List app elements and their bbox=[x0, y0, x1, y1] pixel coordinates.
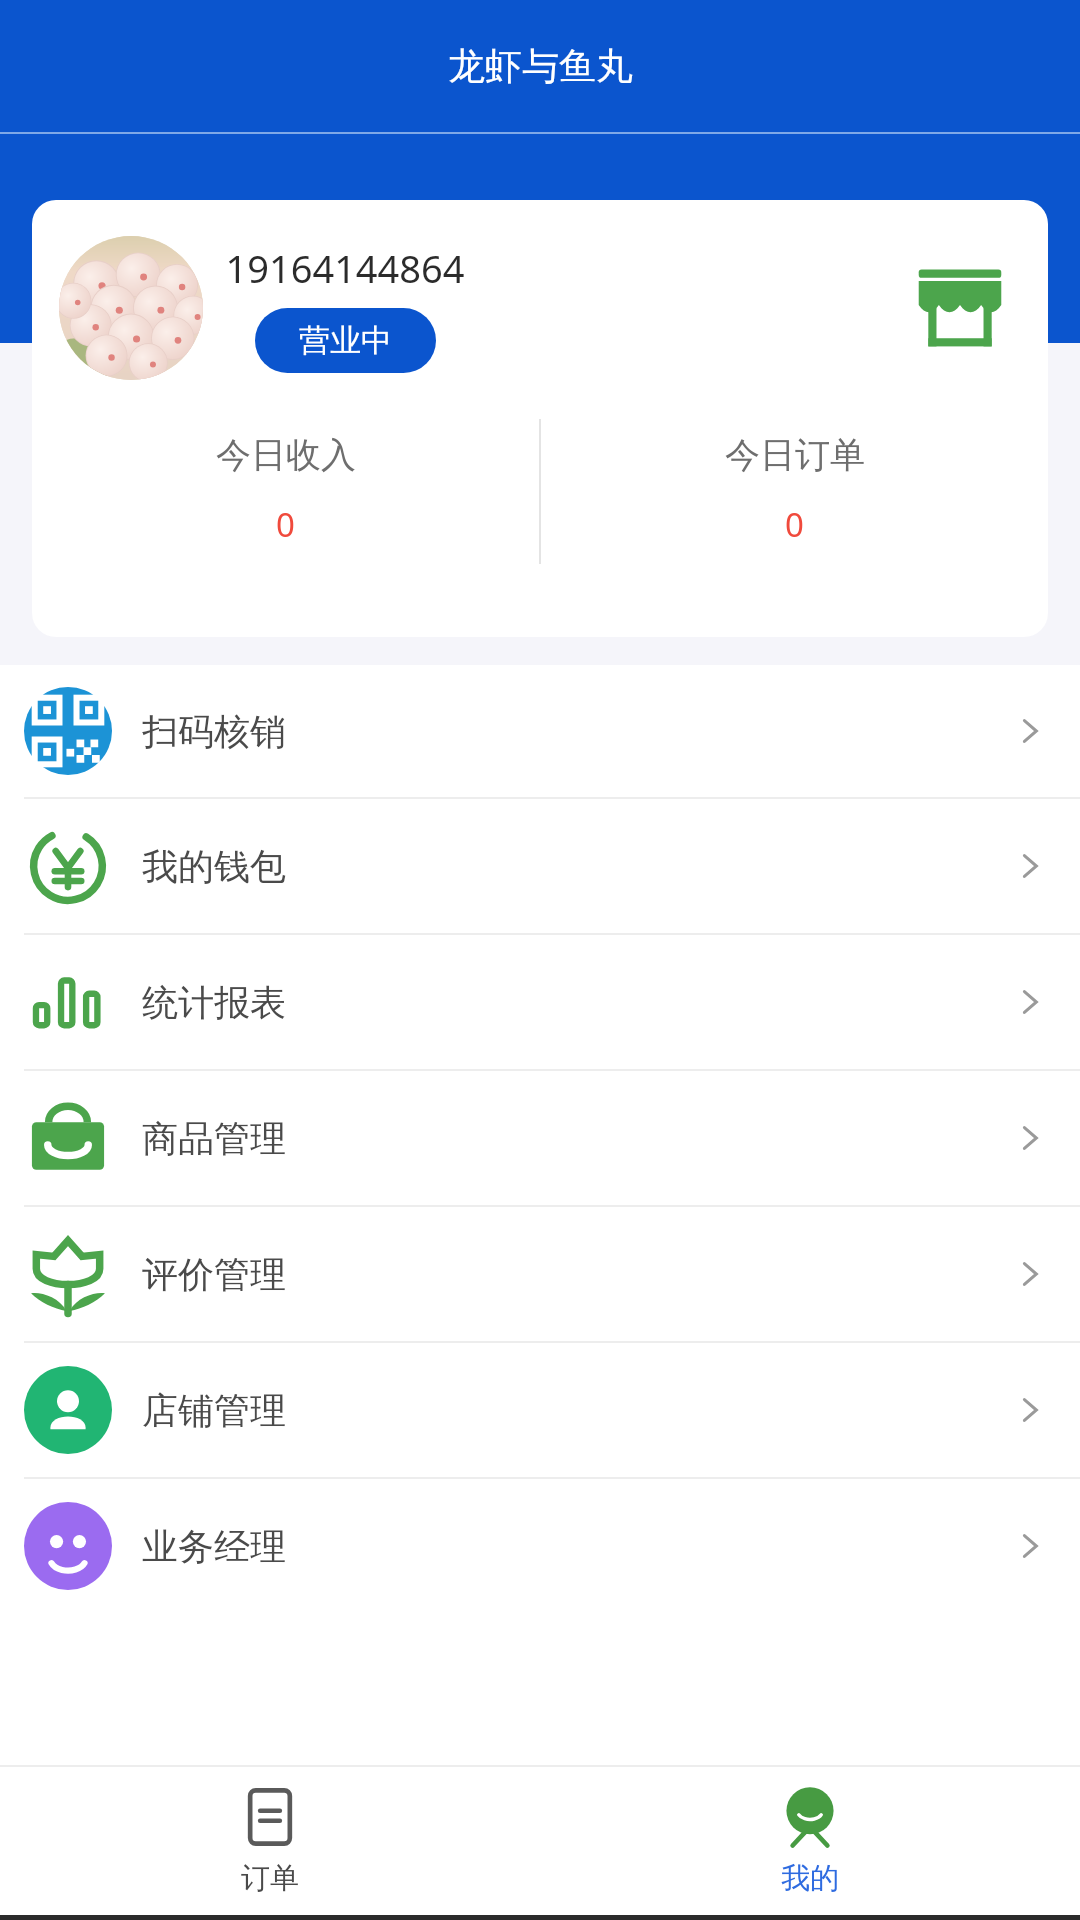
staticText: 扫码核销 bbox=[142, 709, 286, 754]
button[interactable]: Store bbox=[912, 260, 1008, 356]
button[interactable]: 店铺管理 bbox=[0, 1343, 1080, 1477]
button[interactable]: 我的钱包 bbox=[0, 799, 1080, 933]
staticText: 我的钱包 bbox=[142, 844, 286, 889]
button[interactable]: 订单 bbox=[0, 1767, 540, 1915]
staticText: 0 bbox=[276, 502, 295, 547]
staticText: 龙虾与鱼丸 bbox=[448, 43, 633, 90]
staticText: 今日收入 bbox=[216, 433, 356, 477]
button[interactable]: Shop avatar bbox=[32, 200, 1048, 637]
staticText: 店铺管理 bbox=[142, 1388, 286, 1433]
staticText: 我的 bbox=[781, 1860, 839, 1897]
button[interactable]: 我的 bbox=[540, 1767, 1080, 1915]
button[interactable]: Shop avatar bbox=[59, 236, 203, 380]
staticText: 今日订单 bbox=[725, 433, 865, 477]
button[interactable]: 统计报表 bbox=[0, 935, 1080, 1069]
button[interactable]: 今日收入 bbox=[32, 415, 539, 570]
button[interactable]: 评价管理 bbox=[0, 1207, 1080, 1341]
staticText: 商品管理 bbox=[142, 1116, 286, 1161]
button[interactable]: 今日订单 bbox=[541, 415, 1048, 570]
staticText: 统计报表 bbox=[142, 980, 286, 1025]
button[interactable]: 业务经理 bbox=[0, 1479, 1080, 1613]
staticText: 19164144864 bbox=[225, 242, 465, 294]
staticText: 0 bbox=[785, 502, 804, 547]
staticText: 营业中 bbox=[299, 321, 392, 360]
staticText: 业务经理 bbox=[142, 1524, 286, 1569]
staticText: 订单 bbox=[241, 1860, 299, 1897]
staticText: 评价管理 bbox=[142, 1252, 286, 1297]
button[interactable]: 扫码核销 bbox=[0, 665, 1080, 797]
button[interactable]: 商品管理 bbox=[0, 1071, 1080, 1205]
button[interactable]: 营业中 bbox=[255, 308, 436, 373]
